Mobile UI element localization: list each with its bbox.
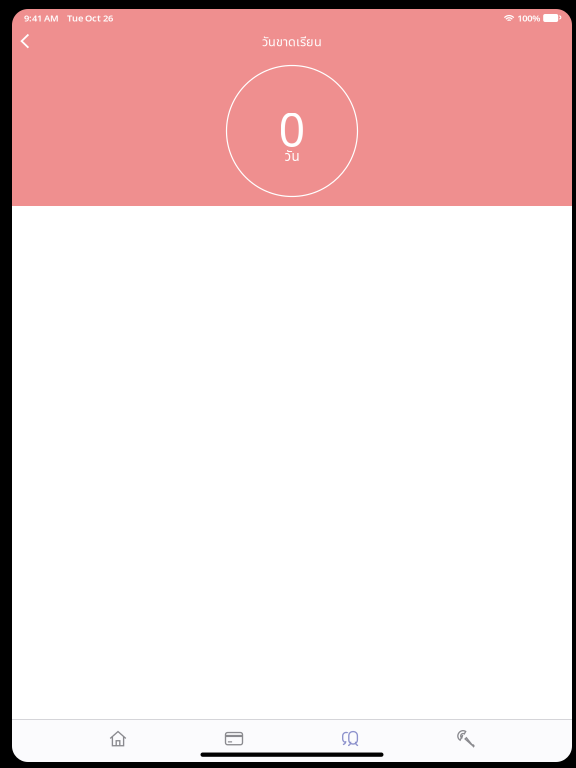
staticText: 9:41 AM: [24, 12, 59, 24]
button[interactable]: Home: [60, 723, 176, 755]
button[interactable]: Payments: [176, 723, 292, 755]
staticText: 100%: [517, 12, 540, 24]
button[interactable]: Back: [12, 27, 38, 57]
staticText: วัน: [284, 147, 299, 167]
button[interactable]: Students: [292, 723, 408, 755]
staticText: 0: [278, 98, 305, 160]
staticText: Tue Oct 26: [67, 12, 113, 24]
staticText: วันขาดเรียน: [262, 33, 322, 52]
button[interactable]: Settings: [408, 723, 524, 755]
